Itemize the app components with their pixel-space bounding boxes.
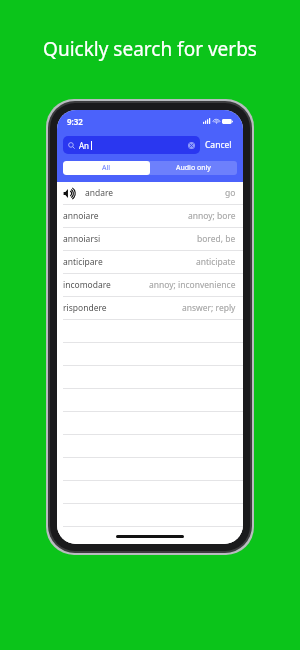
staticText: 9:32 [67,116,83,127]
staticText: bored, be [197,233,236,245]
button[interactable]: anticipare [57,251,243,274]
staticText: Quickly search for verbs [43,36,257,62]
staticText: andare [85,187,114,199]
staticText: anticipare [63,256,103,268]
staticText: All [102,163,111,173]
staticText: Cancel [205,139,232,151]
button[interactable]: An [63,136,200,154]
staticText: rispondere [63,302,107,314]
button[interactable]: Audio only [150,161,237,175]
staticText: An [79,140,90,151]
other: Play audio [63,188,78,199]
button[interactable]: incomodare [57,274,243,297]
other: Clear search [188,142,195,149]
staticText: answer; reply [182,302,236,314]
button[interactable]: Play audio [57,182,243,205]
staticText: incomodare [63,279,111,291]
staticText: anticipate [196,256,236,268]
staticText: Audio only [176,163,211,173]
staticText: annoiare [63,210,99,222]
button[interactable]: All [63,161,150,175]
staticText: annoy; inconvenience [149,279,236,291]
staticText: annoy; bore [188,210,236,222]
staticText: go [225,187,236,199]
button[interactable]: annoiarsi [57,228,243,251]
button[interactable]: Cancel [200,136,237,154]
button[interactable]: annoiare [57,205,243,228]
button[interactable]: rispondere [57,297,243,320]
staticText: annoiarsi [63,233,101,245]
